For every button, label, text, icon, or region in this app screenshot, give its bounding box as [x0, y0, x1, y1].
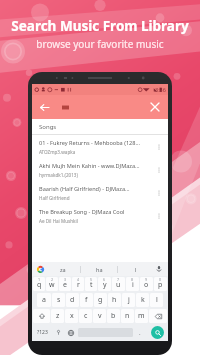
staticText: 3:36	[155, 86, 166, 93]
button[interactable]: za	[45, 262, 80, 276]
button[interactable]: Google	[36, 265, 45, 274]
button[interactable]: Back	[36, 99, 52, 115]
staticText: 8	[131, 277, 134, 282]
staticText: 6	[103, 277, 106, 282]
staticText: Search Music From Library	[11, 17, 189, 35]
staticText: 3	[64, 277, 67, 282]
button[interactable]: m	[135, 309, 148, 323]
staticText: j	[128, 295, 130, 305]
button[interactable]: z	[51, 309, 64, 323]
button[interactable]: l	[118, 262, 154, 276]
button[interactable]: Backspace	[149, 309, 167, 323]
button[interactable]: More options	[152, 186, 165, 199]
staticText: z	[56, 311, 60, 321]
button[interactable]: 5	[85, 277, 97, 291]
staticText: m	[138, 311, 145, 321]
button[interactable]: 9	[140, 277, 153, 291]
button[interactable]: n	[121, 309, 134, 323]
staticText: v	[98, 311, 102, 321]
button[interactable]: 6	[98, 277, 111, 291]
staticText: e	[63, 280, 67, 290]
staticText: b	[111, 311, 116, 321]
button[interactable]: 7	[112, 277, 125, 291]
button[interactable]: ha	[81, 262, 117, 276]
button[interactable]: More options	[152, 140, 165, 153]
button[interactable]: .	[134, 325, 146, 340]
staticText: t	[90, 280, 93, 290]
staticText: 2	[51, 277, 54, 282]
staticText: 0	[159, 277, 162, 282]
staticText: za	[60, 266, 66, 273]
button[interactable]: The Breakup Song - DJMaza Cool	[32, 204, 168, 227]
button[interactable]: 3	[59, 277, 71, 291]
button[interactable]: Shift	[33, 309, 50, 323]
button[interactable]: Search field	[58, 100, 72, 114]
button[interactable]: Emoji	[53, 325, 64, 340]
button[interactable]: Akhi Mujh Mein Kahin - www.DJMaza...	[32, 158, 168, 181]
staticText: 9	[145, 277, 148, 282]
button[interactable]: Change language	[65, 325, 77, 340]
button[interactable]: f	[80, 293, 93, 307]
staticText: w	[49, 280, 55, 290]
staticText: c	[84, 311, 88, 321]
button[interactable]: Search	[151, 326, 164, 339]
staticText: 01 - Fukrey Returns - Mehbooba (128...	[39, 139, 140, 147]
staticText: x	[70, 311, 74, 321]
staticText: Akhi Mujh Mein Kahin - www.DJMaza...	[39, 162, 140, 170]
button[interactable]: 8	[126, 277, 139, 291]
staticText: hyrmakdk1.(2013)	[39, 172, 78, 178]
button[interactable]: Voice input	[154, 264, 164, 274]
button[interactable]: ?123	[33, 325, 52, 340]
button[interactable]: g	[94, 293, 107, 307]
staticText: a	[42, 295, 46, 305]
staticText: Songs	[39, 123, 57, 131]
staticText: 7	[117, 277, 120, 282]
button[interactable]: a	[37, 293, 51, 307]
staticText: f	[85, 295, 88, 305]
staticText: ?123	[37, 329, 48, 336]
button[interactable]: h	[108, 293, 121, 307]
button[interactable]: x	[65, 309, 78, 323]
staticText: ha	[96, 266, 103, 273]
button[interactable]: b	[107, 309, 120, 323]
staticText: y	[103, 280, 107, 290]
button[interactable]: More options	[152, 209, 165, 222]
button[interactable]: c	[79, 309, 92, 323]
button[interactable]: v	[93, 309, 106, 323]
button[interactable]: 01 - Fukrey Returns - Mehbooba (128...	[32, 135, 168, 158]
staticText: 1	[38, 277, 41, 282]
staticText: 5	[90, 277, 93, 282]
staticText: n	[125, 311, 130, 321]
staticText: 4	[77, 277, 80, 282]
staticText: k	[141, 295, 145, 305]
button[interactable]: 1	[33, 277, 45, 291]
staticText: g	[98, 295, 103, 305]
staticText: h	[112, 295, 117, 305]
staticText: Baarish (Half Girlfriend) - DJMaza...	[39, 185, 130, 193]
staticText: Half Girlfriend	[39, 195, 70, 201]
button[interactable]: 2	[46, 277, 58, 291]
staticText: p	[158, 280, 163, 290]
button[interactable]: d	[66, 293, 79, 307]
button[interactable]: s	[52, 293, 65, 307]
staticText: The Breakup Song - DJMaza Cool	[39, 208, 125, 216]
staticText: browse your favorite music	[36, 37, 164, 51]
staticText: r	[77, 280, 80, 290]
staticText: Ae Dil Hai Mushkil	[39, 218, 78, 224]
button[interactable]: Clear	[147, 99, 163, 115]
staticText: d	[70, 295, 75, 305]
button[interactable]: Baarish (Half Girlfriend) - DJMaza...	[32, 181, 168, 204]
button[interactable]: 4	[72, 277, 84, 291]
staticText: l	[156, 295, 158, 305]
staticText: u	[116, 280, 121, 290]
staticText: o	[144, 280, 149, 290]
button[interactable]: 0	[154, 277, 167, 291]
button[interactable]: l	[150, 293, 163, 307]
button[interactable]: j	[122, 293, 135, 307]
staticText: .	[139, 329, 141, 337]
button[interactable]: More options	[152, 163, 165, 176]
staticText: q	[37, 280, 42, 290]
staticText: i	[132, 280, 134, 290]
button[interactable]: k	[136, 293, 149, 307]
